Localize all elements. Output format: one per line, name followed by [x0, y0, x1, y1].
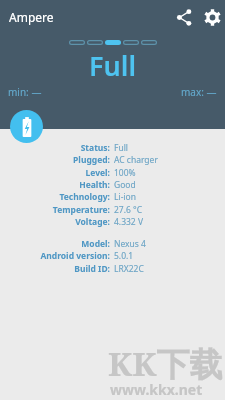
- staticText: Plugged:: [73, 154, 110, 166]
- staticText: Full: [114, 142, 129, 154]
- staticText: min: —: [8, 85, 42, 99]
- staticText: Temperature:: [52, 204, 110, 216]
- staticText: Good: [114, 179, 136, 191]
- staticText: LRX22C: [114, 263, 144, 275]
- staticText: 100%: [114, 167, 136, 179]
- staticText: Nexus 4: [114, 238, 146, 250]
- staticText: Ampere: [9, 9, 54, 25]
- staticText: Technology:: [59, 191, 110, 203]
- button[interactable]: Page indicator: [105, 40, 121, 45]
- staticText: 5.0.1: [114, 250, 134, 262]
- staticText: www.kkx.net: [110, 380, 203, 399]
- staticText: 4.332 V: [114, 216, 144, 228]
- button[interactable]: Page indicator: [69, 40, 85, 45]
- button[interactable]: Page indicator: [123, 40, 139, 45]
- staticText: Status:: [80, 142, 110, 154]
- button[interactable]: Page indicator: [87, 40, 103, 45]
- staticText: Model:: [81, 238, 110, 250]
- staticText: Health:: [79, 179, 110, 191]
- staticText: max: —: [181, 85, 217, 99]
- button[interactable]: Page indicator: [141, 40, 157, 45]
- staticText: Voltage:: [75, 216, 110, 228]
- staticText: 27.6 °C: [114, 204, 143, 216]
- staticText: Android version:: [40, 250, 110, 262]
- staticText: Full: [0, 47, 225, 84]
- button[interactable]: Share: [172, 5, 196, 29]
- staticText: AC charger: [114, 154, 158, 166]
- staticText: Build ID:: [74, 263, 110, 275]
- staticText: Li-ion: [114, 191, 136, 203]
- staticText: KK下载: [108, 341, 223, 386]
- button[interactable]: Measure battery: [10, 110, 43, 143]
- button[interactable]: Settings: [200, 5, 225, 30]
- staticText: Level:: [85, 167, 110, 179]
